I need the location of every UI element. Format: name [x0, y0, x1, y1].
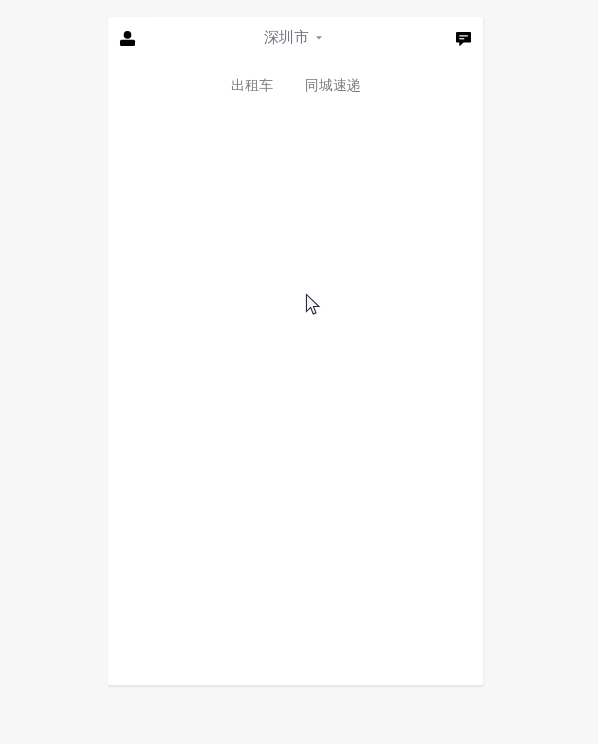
button[interactable]: 深圳市 — [256, 22, 330, 52]
staticText: 出租车 — [231, 77, 273, 95]
button[interactable]: 出租车 — [221, 70, 282, 101]
staticText: 深圳市 — [264, 28, 309, 47]
button[interactable]: Messages — [446, 21, 481, 56]
staticText: 同城速递 — [305, 77, 361, 95]
button[interactable]: 同城速递 — [295, 70, 370, 101]
button[interactable]: Account — [110, 21, 145, 56]
